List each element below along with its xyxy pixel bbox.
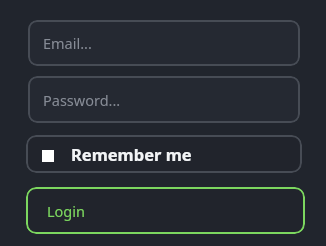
staticText: Remember me	[71, 143, 192, 165]
button[interactable]: Remember me	[26, 135, 302, 173]
button[interactable]: Email...	[28, 20, 300, 66]
staticText: Email...	[43, 33, 92, 53]
button[interactable]: Login	[26, 187, 305, 234]
staticText: Login	[47, 201, 85, 221]
button[interactable]: Password...	[28, 76, 300, 123]
staticText: Password...	[43, 90, 121, 110]
